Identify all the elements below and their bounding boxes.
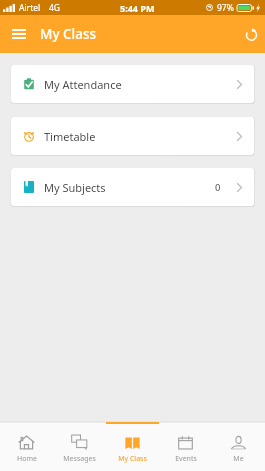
staticText: 97% xyxy=(217,2,234,14)
staticText: 4G xyxy=(49,2,61,14)
button[interactable]: My Class xyxy=(106,422,159,471)
staticText: My Class xyxy=(118,454,147,464)
button[interactable]: My Attendance xyxy=(11,65,254,103)
staticText: My Class xyxy=(40,25,97,43)
button[interactable]: Timetable xyxy=(11,117,254,155)
staticText: Events xyxy=(175,454,197,464)
staticText: Messages xyxy=(63,454,96,464)
button[interactable]: Messages xyxy=(53,422,106,471)
button[interactable]: Refresh xyxy=(238,15,265,53)
button[interactable]: Me xyxy=(212,422,265,471)
staticText: My Subjects xyxy=(44,180,106,195)
staticText: Home xyxy=(17,454,37,464)
button[interactable]: Events xyxy=(159,422,212,471)
staticText: Me xyxy=(233,454,244,464)
button[interactable]: Home xyxy=(0,422,53,471)
staticText: Airtel xyxy=(19,2,41,14)
button[interactable]: My Subjects xyxy=(11,168,254,206)
button[interactable]: Menu xyxy=(0,15,37,53)
staticText: My Attendance xyxy=(44,77,122,92)
staticText: 0 xyxy=(215,181,221,194)
staticText: 5:44 PM xyxy=(120,2,155,14)
staticText: Timetable xyxy=(44,129,96,144)
